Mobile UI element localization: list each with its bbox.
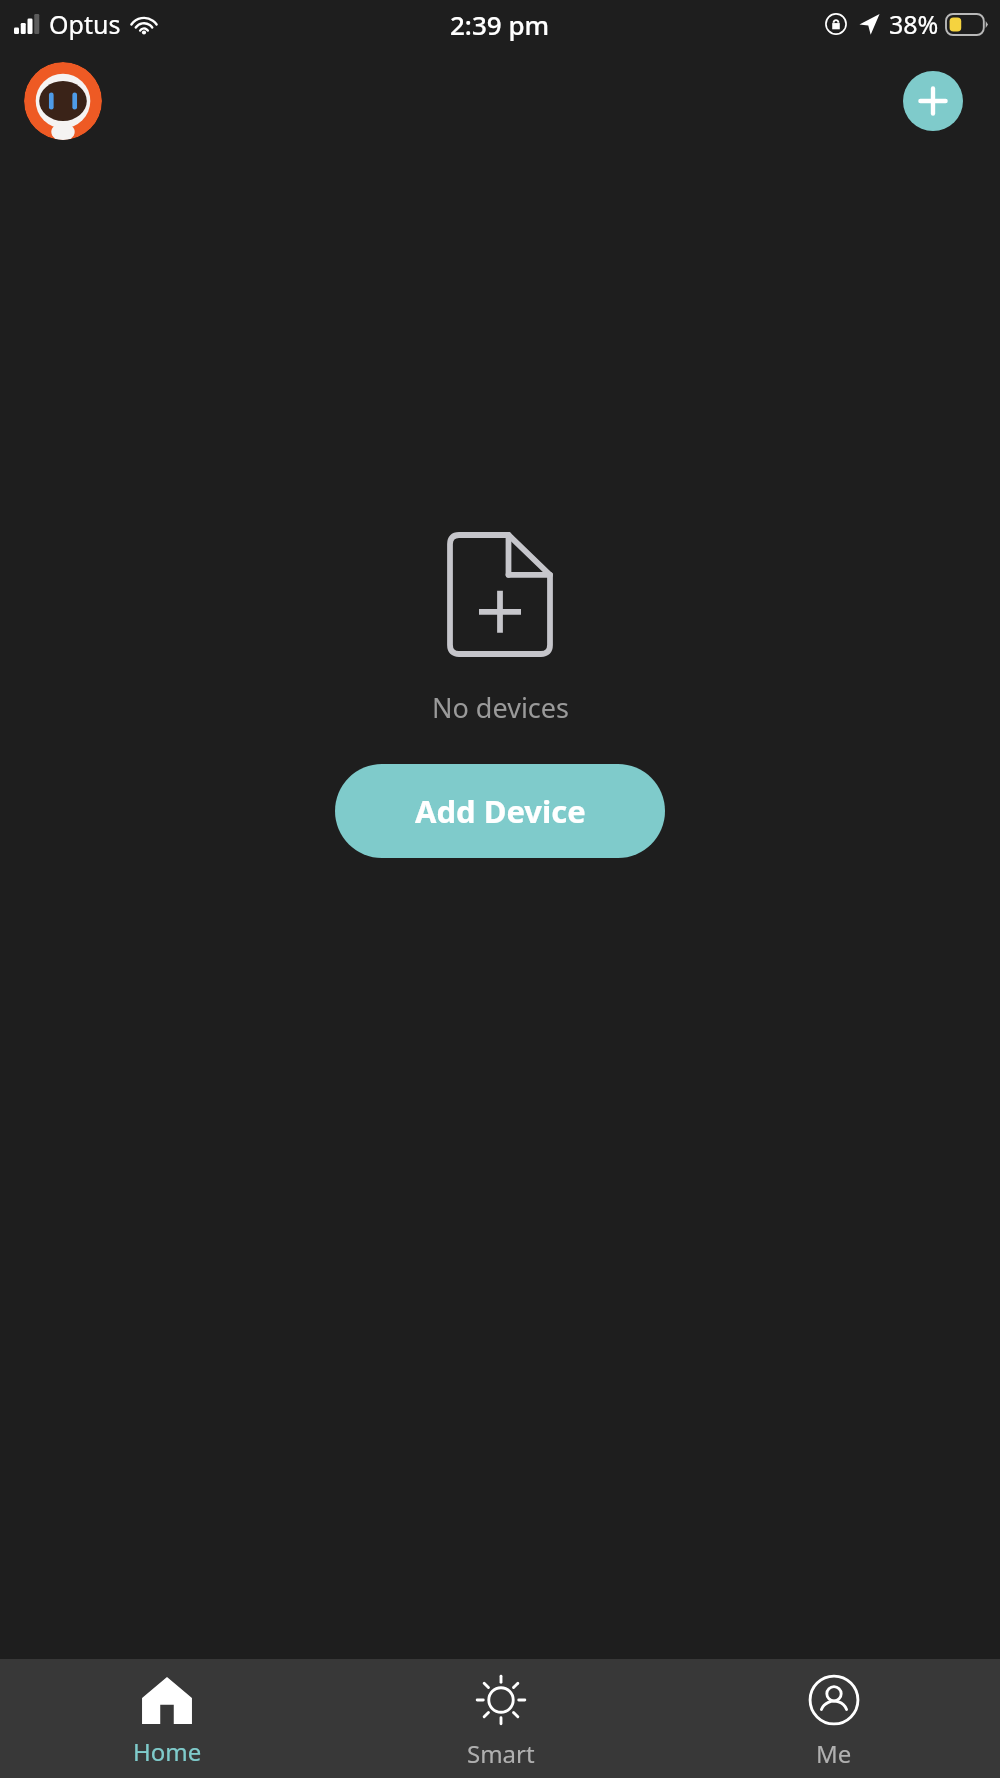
staticText: 2:39 pm <box>450 7 550 42</box>
button[interactable]: Add Device <box>335 764 665 858</box>
staticText: Optus <box>49 7 121 41</box>
staticText: No devices <box>432 689 569 726</box>
staticText: 38% <box>889 7 939 41</box>
staticText: Home <box>133 1735 202 1768</box>
staticText: Smart <box>467 1737 535 1770</box>
button[interactable]: Smart <box>334 1659 667 1778</box>
staticText: Add Device <box>415 790 586 832</box>
staticText: Me <box>816 1737 852 1770</box>
button[interactable]: Add <box>903 71 963 131</box>
button[interactable]: Profile <box>24 62 102 140</box>
button[interactable]: Home <box>0 1659 334 1778</box>
button[interactable]: Me <box>667 1659 1000 1778</box>
